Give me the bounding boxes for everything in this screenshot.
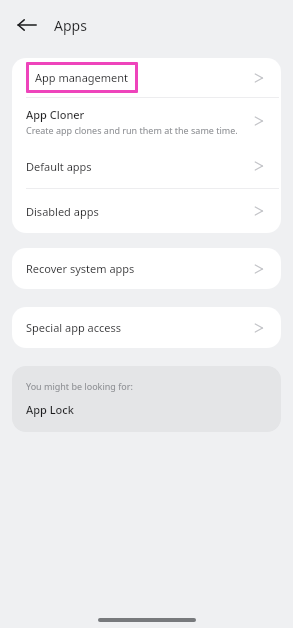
staticText: Create app clones and run them at the sa… (26, 124, 238, 136)
staticText: Disabled apps (26, 204, 99, 219)
button[interactable]: Back (10, 8, 44, 42)
staticText: Default apps (26, 159, 92, 174)
button[interactable]: App management (12, 58, 281, 97)
staticText: You might be looking for: (26, 380, 133, 392)
button[interactable]: Disabled apps (12, 189, 281, 233)
staticText: App Cloner (26, 107, 85, 122)
staticText: Special app access (26, 320, 122, 335)
staticText: App management (35, 70, 129, 85)
button[interactable]: Recover system apps (12, 248, 281, 289)
button[interactable]: Special app access (12, 307, 281, 348)
button[interactable]: App Lock (12, 392, 281, 426)
staticText: App Lock (26, 402, 74, 417)
staticText: Recover system apps (26, 261, 135, 276)
button[interactable]: Default apps (12, 144, 281, 188)
button[interactable]: App Cloner (12, 98, 281, 144)
staticText: Apps (54, 16, 87, 35)
